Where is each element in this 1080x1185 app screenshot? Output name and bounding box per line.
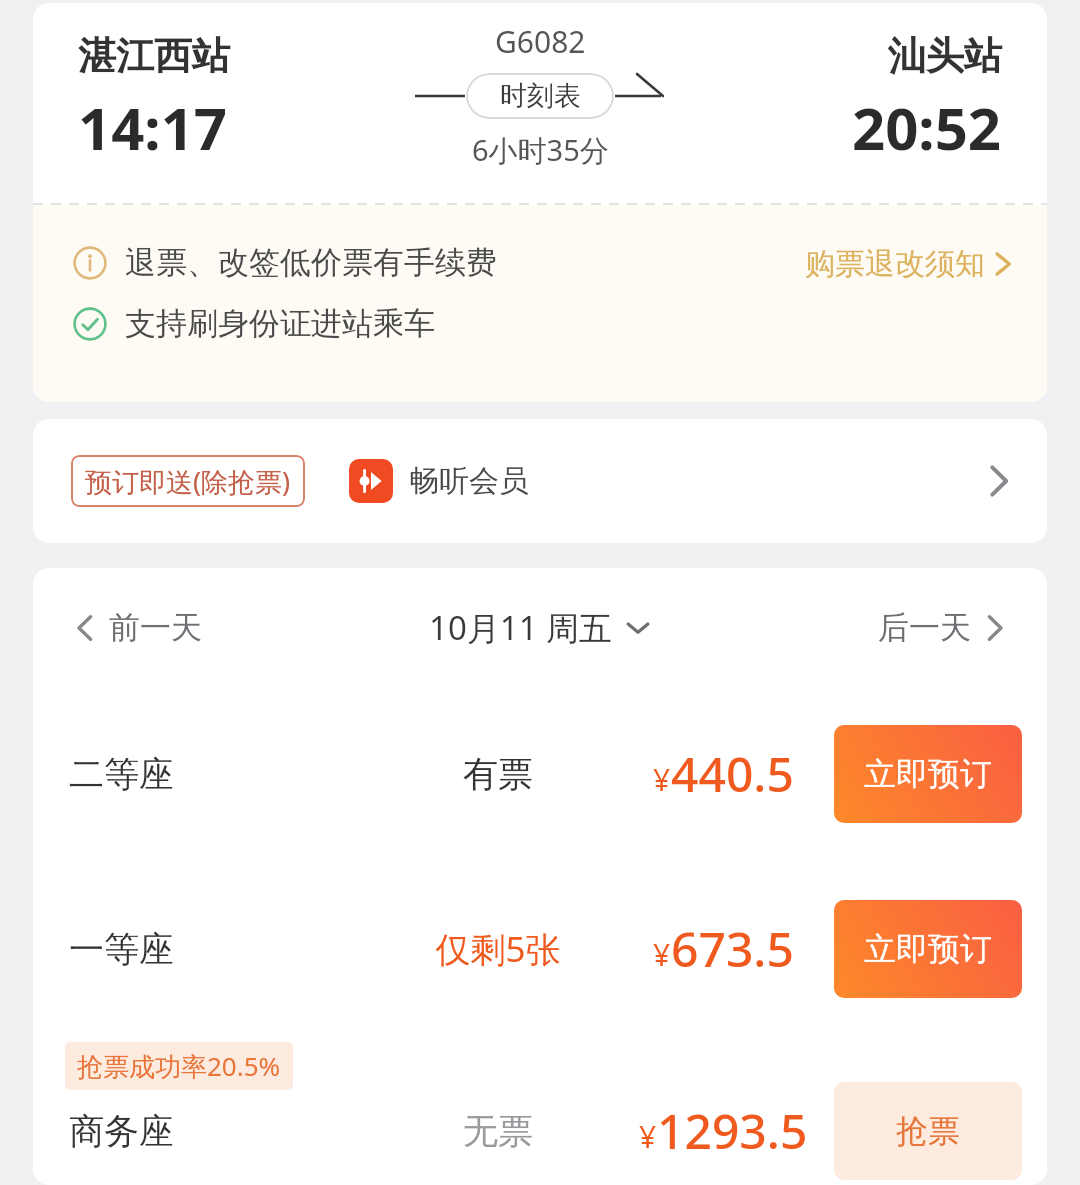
staticText: 有票 xyxy=(463,752,533,796)
button[interactable]: 后一天 xyxy=(868,598,1015,657)
staticText: 673.5 xyxy=(671,916,794,981)
button[interactable]: 抢票 xyxy=(834,1082,1022,1180)
staticText: 20:52 xyxy=(852,88,1002,167)
staticText: 退票、改签低价票有手续费 xyxy=(125,243,497,282)
staticText: 畅听会员 xyxy=(409,462,529,500)
button[interactable]: 10月11 周五 xyxy=(419,595,661,660)
staticText: 仅剩5张 xyxy=(435,925,561,973)
staticText: 时刻表 xyxy=(500,79,581,113)
staticText: 二等座 xyxy=(69,752,174,796)
staticText: 前一天 xyxy=(109,608,202,647)
staticText: 立即预订 xyxy=(864,929,992,969)
staticText: ¥ xyxy=(653,759,671,800)
staticText: ¥ xyxy=(639,1116,657,1157)
staticText: 抢票成功率20.5% xyxy=(77,1048,281,1084)
button[interactable]: 时刻表 xyxy=(415,72,665,120)
button[interactable]: 预订即送(除抢票) xyxy=(33,419,1047,543)
staticText: 预订即送(除抢票) xyxy=(85,463,291,500)
staticText: ¥ xyxy=(653,934,671,975)
staticText: 1293.5 xyxy=(657,1098,808,1163)
button[interactable]: 前一天 xyxy=(65,598,212,657)
staticText: 抢票 xyxy=(896,1111,960,1151)
staticText: 购票退改须知 xyxy=(805,245,985,283)
staticText: G6082 xyxy=(495,21,586,62)
staticText: 湛江西站 xyxy=(78,32,230,80)
button[interactable]: 立即预订 xyxy=(834,725,1022,823)
staticText: 后一天 xyxy=(878,608,971,647)
staticText: 汕头站 xyxy=(888,32,1002,80)
button[interactable]: 立即预订 xyxy=(834,900,1022,998)
staticText: 6小时35分 xyxy=(472,130,609,170)
staticText: 14:17 xyxy=(78,88,228,167)
staticText: 立即预订 xyxy=(864,754,992,794)
staticText: 一等座 xyxy=(69,927,174,971)
button[interactable]: 购票退改须知 xyxy=(799,241,1019,287)
staticText: 无票 xyxy=(463,1109,533,1153)
staticText: 支持刷身份证进站乘车 xyxy=(125,304,435,343)
staticText: 440.5 xyxy=(671,741,794,806)
staticText: 10月11 周五 xyxy=(429,605,613,650)
staticText: 商务座 xyxy=(69,1109,174,1153)
